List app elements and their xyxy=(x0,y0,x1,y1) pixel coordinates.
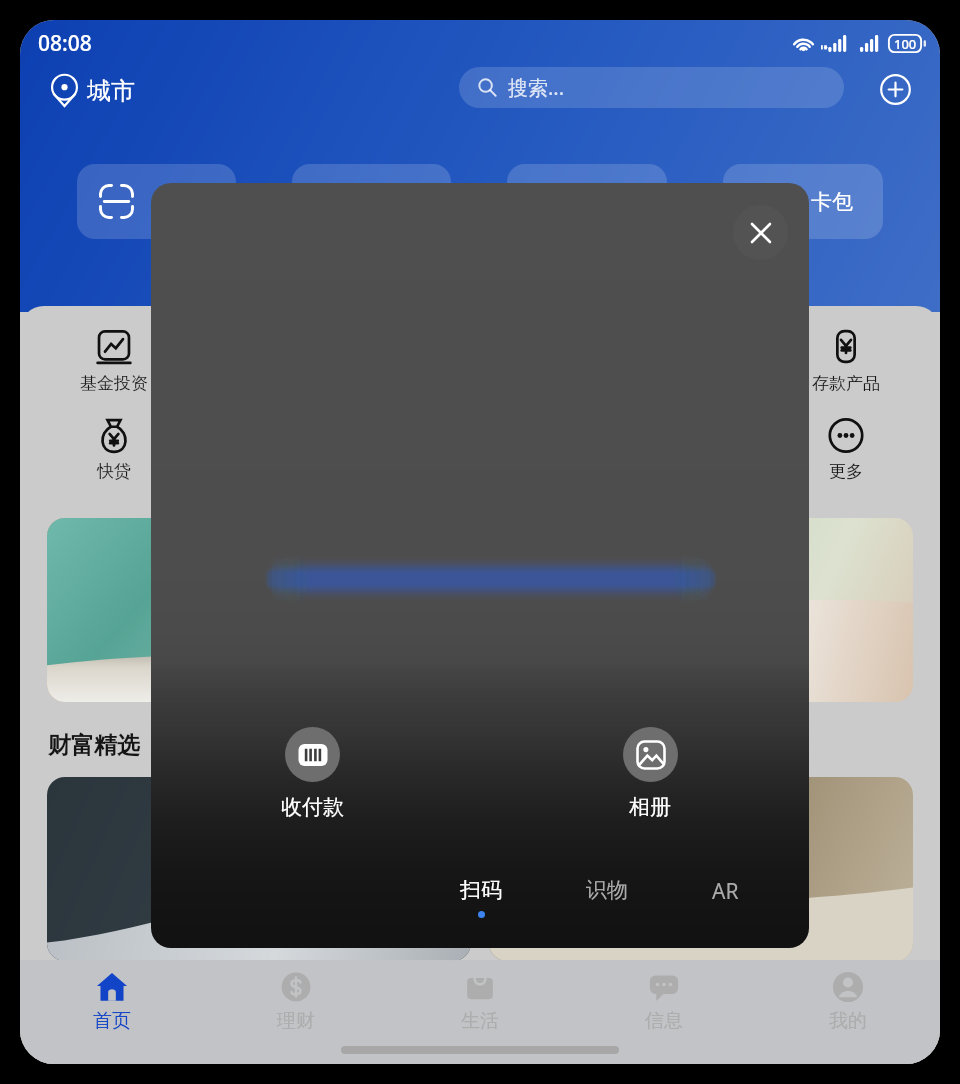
button[interactable]: 识物 xyxy=(586,877,628,911)
button[interactable]: 基金投资 xyxy=(54,330,174,394)
staticText: 首页 xyxy=(93,1009,131,1033)
button[interactable]: Close xyxy=(733,205,788,260)
button[interactable] xyxy=(507,164,667,239)
button[interactable] xyxy=(489,518,913,702)
staticText: 搜索... xyxy=(508,74,565,101)
button[interactable]: 我的 xyxy=(756,971,940,1033)
staticText: 存款产品 xyxy=(812,373,880,394)
button[interactable]: 信息 xyxy=(572,971,756,1033)
staticText: 城市 xyxy=(87,76,135,106)
staticText: 收付款 xyxy=(281,794,344,820)
button[interactable] xyxy=(47,777,471,961)
staticText: 财富精选 xyxy=(48,731,140,760)
staticText: 08:08 xyxy=(38,29,92,58)
button[interactable]: Add xyxy=(875,69,915,109)
staticText: 理财 xyxy=(277,1009,315,1033)
staticText: 基金投资 xyxy=(80,373,148,394)
button[interactable]: 扫码 xyxy=(460,877,502,918)
button[interactable] xyxy=(47,518,471,702)
staticText: 扫码 xyxy=(460,877,502,903)
button[interactable]: 收付款 xyxy=(257,727,367,820)
button[interactable]: 首页 xyxy=(20,971,204,1033)
button[interactable]: 搜索... xyxy=(459,67,844,108)
button[interactable]: 相册 xyxy=(595,727,705,820)
button[interactable]: 更多 xyxy=(786,418,906,482)
staticText: AR xyxy=(712,877,739,906)
button[interactable]: 存款产品 xyxy=(786,330,906,394)
staticText: 生活 xyxy=(461,1009,499,1033)
staticText: 信息 xyxy=(645,1009,683,1033)
staticText: 识物 xyxy=(586,877,628,903)
staticText: 100 xyxy=(894,35,917,53)
button[interactable]: 生活 xyxy=(388,971,572,1033)
staticText: 卡包 xyxy=(811,189,853,215)
button[interactable] xyxy=(489,777,913,961)
button[interactable]: 理财 xyxy=(204,971,388,1033)
staticText: 快贷 xyxy=(97,461,131,482)
staticText: 我的 xyxy=(829,1009,867,1033)
button[interactable]: AR xyxy=(712,877,739,914)
staticText: 更多 xyxy=(829,461,863,482)
button[interactable] xyxy=(292,164,451,239)
button[interactable]: 城市 xyxy=(43,67,143,115)
button[interactable]: 快贷 xyxy=(54,418,174,482)
button[interactable] xyxy=(77,164,236,239)
staticText: 相册 xyxy=(629,794,671,820)
button[interactable]: 卡包 xyxy=(723,164,883,239)
